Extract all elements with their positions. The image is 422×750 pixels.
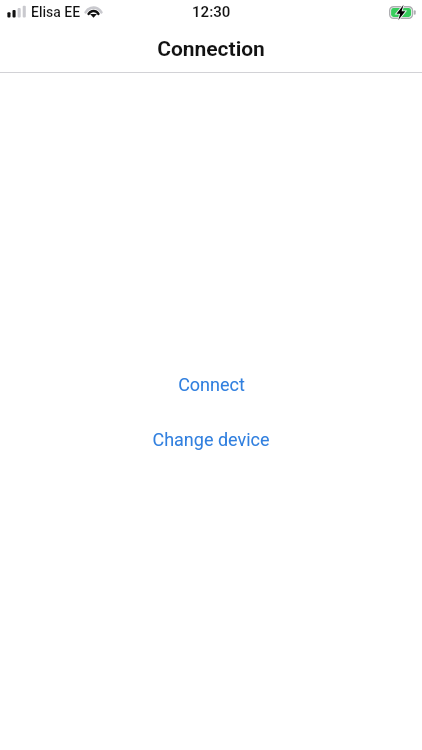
staticText: 12:30 xyxy=(192,3,231,21)
other: Wi-Fi connected xyxy=(83,3,104,21)
staticText: Connect xyxy=(178,374,245,395)
staticText: Connection xyxy=(157,37,265,62)
staticText: Elisa EE xyxy=(31,4,81,20)
other: Cellular signal strength xyxy=(5,5,26,18)
staticText: Change device xyxy=(152,429,270,450)
button[interactable]: Change device xyxy=(136,421,286,458)
other: Battery charging xyxy=(389,6,416,19)
button[interactable]: Connect xyxy=(162,366,261,403)
